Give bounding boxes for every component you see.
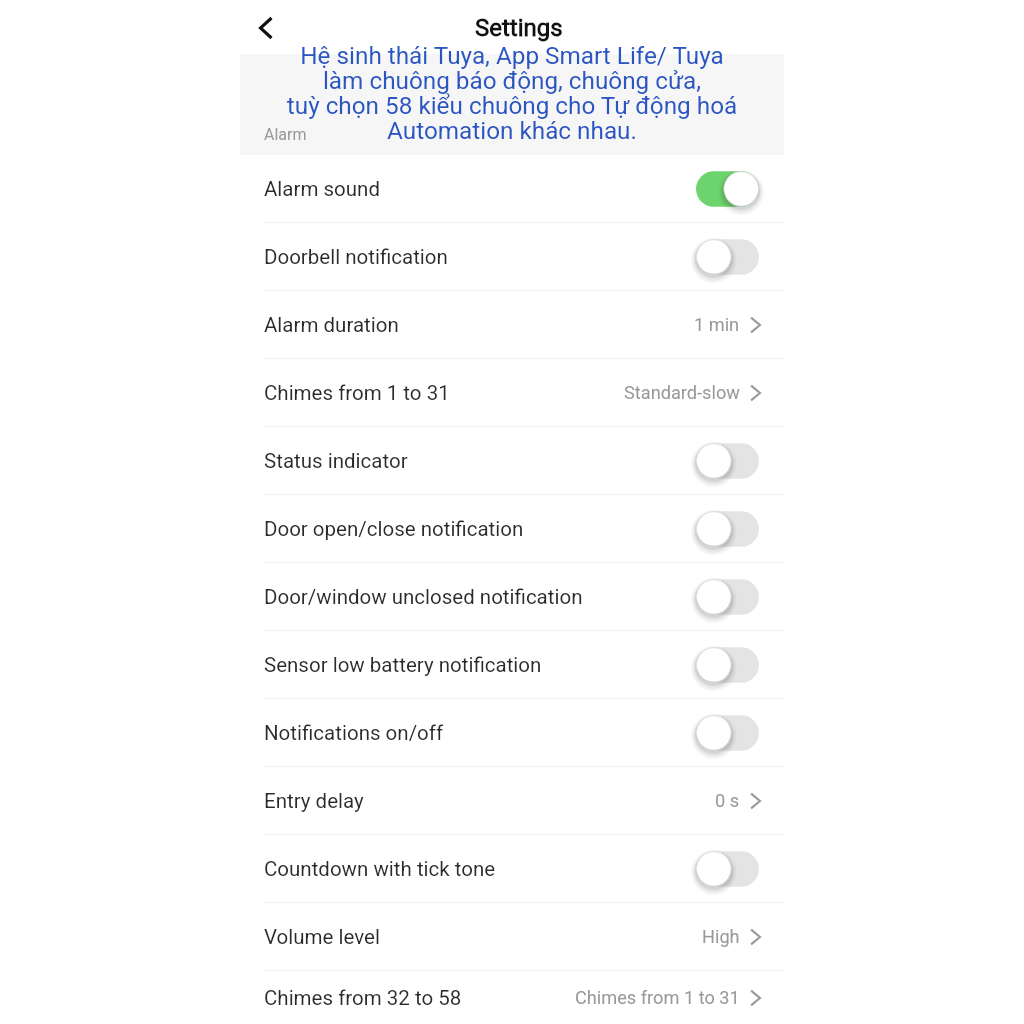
button[interactable]: Chimes from 1 to 31 xyxy=(240,359,784,426)
button[interactable]: Doorbell notification xyxy=(240,223,784,290)
staticText: Chimes from 1 to 31 xyxy=(575,987,740,1008)
button[interactable]: Toggle off xyxy=(696,711,759,755)
button[interactable]: Countdown with tick tone xyxy=(240,835,784,902)
staticText: Countdown with tick tone xyxy=(264,857,496,881)
staticText: Alarm duration xyxy=(264,313,399,337)
staticText: 1 min xyxy=(694,314,740,335)
staticText: Alarm sound xyxy=(264,177,380,201)
button[interactable]: Door/window unclosed notification xyxy=(240,563,784,630)
button[interactable]: Sensor low battery notification xyxy=(240,631,784,698)
button[interactable]: Toggle off xyxy=(696,507,759,551)
staticText: Volume level xyxy=(264,925,380,949)
staticText: Hệ sinh thái Tuya, App Smart Life/ Tuya … xyxy=(0,41,1024,145)
button[interactable]: Toggle off xyxy=(696,643,759,687)
staticText: Door open/close notification xyxy=(264,517,524,541)
staticText: Entry delay xyxy=(264,789,364,813)
button[interactable]: Notifications on/off xyxy=(240,699,784,766)
button[interactable]: Status indicator xyxy=(240,427,784,494)
staticText: Status indicator xyxy=(264,449,408,473)
button[interactable]: Toggle off xyxy=(696,847,759,891)
button[interactable]: Toggle off xyxy=(696,439,759,483)
button[interactable]: Chimes from 32 to 58 xyxy=(240,971,784,1024)
button[interactable]: Volume level xyxy=(240,903,784,970)
button[interactable]: Back xyxy=(242,4,290,52)
button[interactable]: Alarm duration xyxy=(240,291,784,358)
staticText: 0 s xyxy=(715,790,740,811)
button[interactable]: Toggle on xyxy=(696,167,759,211)
staticText: Alarm xyxy=(264,125,307,144)
staticText: Doorbell notification xyxy=(264,245,448,269)
staticText: High xyxy=(702,926,740,947)
staticText: Notifications on/off xyxy=(264,721,444,745)
button[interactable]: Entry delay xyxy=(240,767,784,834)
staticText: Chimes from 32 to 58 xyxy=(264,986,462,1010)
button[interactable]: Alarm sound xyxy=(240,155,784,222)
button[interactable]: Toggle off xyxy=(696,235,759,279)
staticText: Door/window unclosed notification xyxy=(264,585,583,609)
button[interactable]: Toggle off xyxy=(696,575,759,619)
staticText: Chimes from 1 to 31 xyxy=(264,381,450,405)
staticText: Settings xyxy=(475,14,563,42)
staticText: Standard-slow xyxy=(624,382,740,403)
staticText: Sensor low battery notification xyxy=(264,653,542,677)
button[interactable]: Door open/close notification xyxy=(240,495,784,562)
